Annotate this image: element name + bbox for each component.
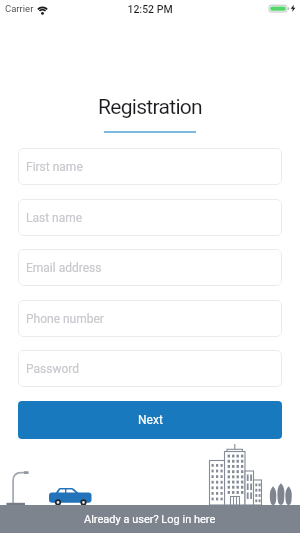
staticText: First name	[26, 160, 83, 174]
staticText: 12:52 PM	[0, 3, 300, 15]
staticText: Registration	[98, 95, 202, 120]
staticText: Next	[138, 413, 163, 427]
staticText: Already a user? Log in here	[84, 513, 216, 526]
staticText: Phone number	[26, 312, 104, 326]
button[interactable]: Next	[18, 401, 282, 439]
button[interactable]: Last name	[18, 199, 282, 236]
staticText: Password	[26, 362, 80, 376]
button[interactable]: Already a user? Log in here	[0, 505, 300, 533]
staticText: Last name	[26, 211, 83, 225]
staticText: Email address	[26, 261, 102, 275]
button[interactable]: Password	[18, 350, 282, 387]
button[interactable]: First name	[18, 148, 282, 185]
button[interactable]: Email address	[18, 249, 282, 286]
button[interactable]: Phone number	[18, 300, 282, 337]
staticText: Carrier	[5, 3, 34, 14]
